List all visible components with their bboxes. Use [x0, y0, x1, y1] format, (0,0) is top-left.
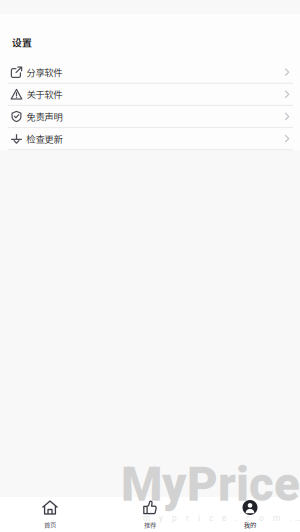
- staticText: 设置: [12, 35, 32, 49]
- staticText: 推荐: [144, 520, 156, 529]
- button[interactable]: 首页: [0, 497, 100, 532]
- staticText: 首页: [44, 520, 56, 529]
- button[interactable]: 检查更新: [0, 128, 300, 149]
- staticText: 分享软件: [26, 65, 62, 79]
- staticText: 关于软件: [26, 87, 62, 101]
- button[interactable]: 我的: [200, 497, 300, 532]
- staticText: MyPrice: [121, 457, 300, 512]
- staticText: 我的: [244, 520, 256, 529]
- staticText: myprice.com.cn: [143, 513, 300, 523]
- button[interactable]: 分享软件: [0, 61, 300, 83]
- button[interactable]: 推荐: [100, 497, 200, 532]
- button[interactable]: 免责声明: [0, 106, 300, 127]
- staticText: 检查更新: [26, 132, 62, 145]
- button[interactable]: 关于软件: [0, 84, 300, 105]
- staticText: 免责声明: [26, 110, 62, 123]
